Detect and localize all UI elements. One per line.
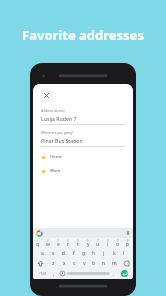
staticText: e — [57, 241, 60, 248]
button[interactable]: h — [89, 248, 99, 258]
button[interactable]: m — [109, 258, 119, 268]
button[interactable]: 5 — [73, 238, 83, 248]
button[interactable]: g — [79, 248, 89, 258]
button[interactable]: Home — [41, 154, 125, 160]
button[interactable]: b — [89, 258, 99, 268]
staticText: 5 — [77, 239, 79, 243]
staticText: q — [36, 241, 40, 248]
staticText: 9 — [117, 239, 119, 243]
button[interactable]: Enter — [121, 270, 128, 277]
staticText: t — [77, 241, 79, 248]
staticText: i — [107, 241, 109, 248]
button[interactable]: l — [119, 248, 129, 258]
staticText: 7 — [97, 239, 99, 243]
staticText: k — [113, 250, 116, 257]
staticText: 8 — [107, 239, 109, 243]
staticText: 1 — [37, 239, 39, 243]
button[interactable]: , — [49, 269, 58, 278]
staticText: 3 — [57, 239, 59, 243]
staticText: s — [52, 250, 55, 257]
button[interactable]: k — [109, 248, 119, 258]
button[interactable]: 1 — [33, 238, 43, 248]
staticText: o — [116, 241, 120, 248]
staticText: Where are you going? — [41, 131, 74, 135]
staticText: 4 — [67, 239, 69, 243]
button[interactable]: x — [59, 258, 69, 268]
button[interactable]: Work — [41, 168, 125, 174]
button[interactable]: j — [99, 248, 109, 258]
button[interactable]: Voice input — [58, 269, 67, 278]
button[interactable]: c — [69, 258, 79, 268]
staticText: Favorite addresses — [0, 26, 166, 44]
staticText: l — [123, 250, 125, 257]
staticText: c — [73, 260, 76, 267]
staticText: z — [52, 260, 55, 267]
staticText: w — [46, 241, 50, 248]
staticText: Address (street) — [41, 109, 65, 113]
button[interactable]: s — [48, 248, 59, 258]
staticText: h — [92, 250, 96, 257]
button[interactable]: v — [79, 258, 89, 268]
staticText: 6 — [87, 239, 89, 243]
staticText: p — [126, 241, 130, 248]
staticText: f — [73, 250, 75, 257]
staticText: , — [53, 271, 55, 277]
staticText: a — [41, 250, 44, 257]
button[interactable]: Address (street) — [41, 109, 125, 125]
staticText: Pinar Bus Station — [41, 137, 83, 144]
button[interactable]: Backspace — [119, 258, 133, 268]
staticText: m — [112, 260, 117, 267]
staticText: n — [102, 260, 106, 267]
staticText: r — [67, 241, 70, 248]
button[interactable]: 6 — [83, 238, 93, 248]
staticText: x — [63, 260, 66, 267]
staticText: Work — [50, 168, 61, 174]
staticText: Home — [50, 154, 62, 160]
button[interactable]: 9 — [113, 238, 123, 248]
button[interactable]: Space — [67, 272, 110, 275]
staticText: Lusija Ruden 7 — [41, 115, 77, 122]
button[interactable]: 4 — [63, 238, 73, 248]
button[interactable]: f — [69, 248, 79, 258]
staticText: ?123 — [39, 272, 46, 276]
button[interactable]: 3 — [53, 238, 63, 248]
staticText: g — [82, 250, 86, 257]
button[interactable]: 2 — [43, 238, 53, 248]
button[interactable]: Close — [41, 90, 52, 101]
staticText: 2 — [47, 239, 49, 243]
staticText: v — [83, 260, 86, 267]
button[interactable]: d — [59, 248, 69, 258]
staticText: 0 — [127, 239, 129, 243]
button[interactable]: 8 — [103, 238, 113, 248]
button[interactable]: n — [99, 258, 109, 268]
staticText: d — [62, 250, 66, 257]
button[interactable]: z — [48, 258, 59, 268]
staticText: b — [92, 260, 96, 267]
button[interactable]: a — [37, 248, 48, 258]
staticText: y — [87, 241, 90, 248]
staticText: u — [96, 241, 100, 248]
button[interactable]: Where are you going? — [41, 131, 125, 147]
staticText: . — [113, 271, 115, 277]
button[interactable]: Shift — [33, 258, 48, 268]
button[interactable]: ?123 — [35, 269, 49, 278]
button[interactable]: . — [110, 269, 118, 278]
button[interactable]: 0 — [123, 238, 133, 248]
staticText: j — [103, 250, 105, 257]
button[interactable]: 7 — [93, 238, 103, 248]
